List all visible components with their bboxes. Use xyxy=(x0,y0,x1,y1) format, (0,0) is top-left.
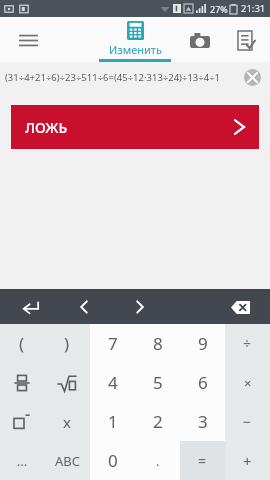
staticText: 21:31 xyxy=(241,2,266,15)
button[interactable]: Clear xyxy=(242,67,262,87)
staticText: 3 xyxy=(198,410,208,433)
staticText: ) xyxy=(64,332,70,355)
staticText: 7 xyxy=(108,332,118,355)
staticText: + xyxy=(243,451,252,471)
button[interactable]: … xyxy=(0,441,44,480)
button[interactable]: Square root xyxy=(44,363,90,402)
staticText: 4 xyxy=(108,371,118,394)
button[interactable]: 1 xyxy=(90,402,135,441)
staticText: ( xyxy=(19,332,25,355)
button[interactable]: 4 xyxy=(90,363,135,402)
staticText: . xyxy=(156,452,160,470)
button[interactable]: ( xyxy=(0,324,44,363)
staticText: 8 xyxy=(153,332,163,355)
staticText: ЛОЖЬ xyxy=(25,118,68,137)
button[interactable]: + xyxy=(225,441,270,480)
button[interactable]: 6 xyxy=(180,363,225,402)
button[interactable]: × xyxy=(225,363,270,402)
button[interactable]: Left xyxy=(68,291,100,323)
staticText: 0 xyxy=(108,449,118,472)
button[interactable]: 2 xyxy=(135,402,180,441)
staticText: (31÷4+21÷6)÷23÷511÷6=(45÷12·313÷24)÷13÷4… xyxy=(5,71,221,84)
button[interactable]: 9 xyxy=(180,324,225,363)
staticText: ÷ xyxy=(243,334,252,353)
button[interactable]: Camera xyxy=(184,24,216,56)
button[interactable]: Menu xyxy=(12,24,44,56)
staticText: 6 xyxy=(198,371,208,394)
button[interactable]: ABC xyxy=(44,441,90,480)
staticText: Изменить xyxy=(109,42,162,57)
button[interactable]: . xyxy=(135,441,180,480)
staticText: … xyxy=(17,452,28,470)
button[interactable]: Fraction xyxy=(0,363,44,402)
staticText: − xyxy=(243,412,252,431)
button[interactable]: 3 xyxy=(180,402,225,441)
staticText: = xyxy=(198,451,207,470)
button[interactable]: ) xyxy=(44,324,90,363)
button[interactable]: Enter xyxy=(14,291,46,323)
button[interactable]: 5 xyxy=(135,363,180,402)
button[interactable]: 8 xyxy=(135,324,180,363)
button[interactable]: x xyxy=(44,402,90,441)
staticText: x xyxy=(63,412,71,432)
button[interactable]: Tasks xyxy=(230,24,262,56)
button[interactable]: − xyxy=(225,402,270,441)
staticText: 27% xyxy=(210,3,228,15)
staticText: 1 xyxy=(108,410,118,433)
button[interactable]: 7 xyxy=(90,324,135,363)
button[interactable]: Square xyxy=(0,402,44,441)
staticText: 2 xyxy=(153,410,163,433)
staticText: ABC xyxy=(55,452,80,470)
button[interactable]: ЛОЖЬ xyxy=(11,105,259,149)
staticText: 5 xyxy=(153,371,163,394)
button[interactable]: Изменить xyxy=(99,17,171,62)
button[interactable]: Right xyxy=(124,291,156,323)
staticText: 9 xyxy=(198,332,208,355)
staticText: × xyxy=(244,374,252,392)
button[interactable]: = xyxy=(180,441,225,480)
button[interactable]: Backspace xyxy=(224,291,256,323)
button[interactable]: ÷ xyxy=(225,324,270,363)
button[interactable]: 0 xyxy=(90,441,135,480)
